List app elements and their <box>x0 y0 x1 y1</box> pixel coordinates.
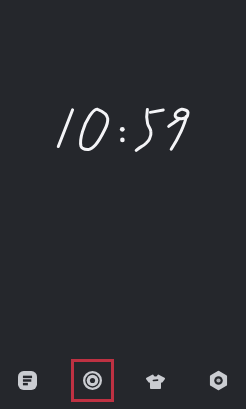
button[interactable]: Notes <box>6 359 49 402</box>
button[interactable]: Shirt <box>134 359 177 402</box>
button[interactable]: Settings <box>197 359 240 402</box>
button[interactable]: Record <box>71 359 114 402</box>
